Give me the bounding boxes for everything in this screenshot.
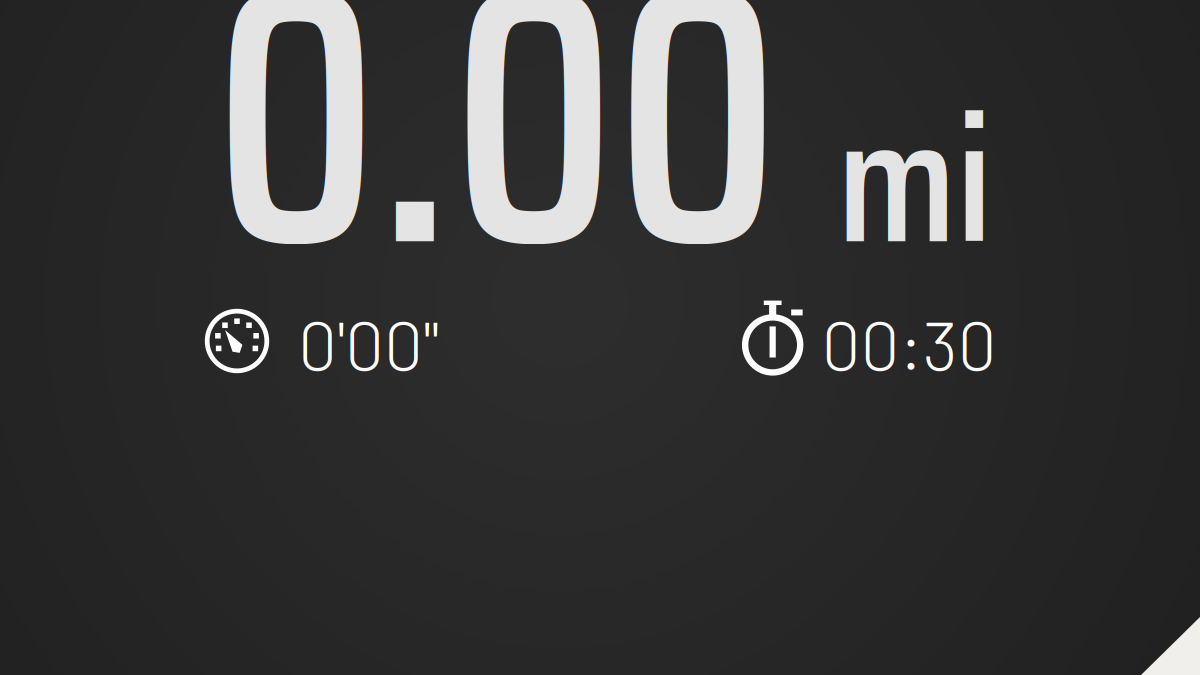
staticText: 0.00 bbox=[214, 0, 815, 400]
staticText: 0'00" bbox=[298, 301, 440, 385]
staticText: mi bbox=[837, 43, 992, 318]
staticText: 00:30 bbox=[821, 301, 996, 385]
